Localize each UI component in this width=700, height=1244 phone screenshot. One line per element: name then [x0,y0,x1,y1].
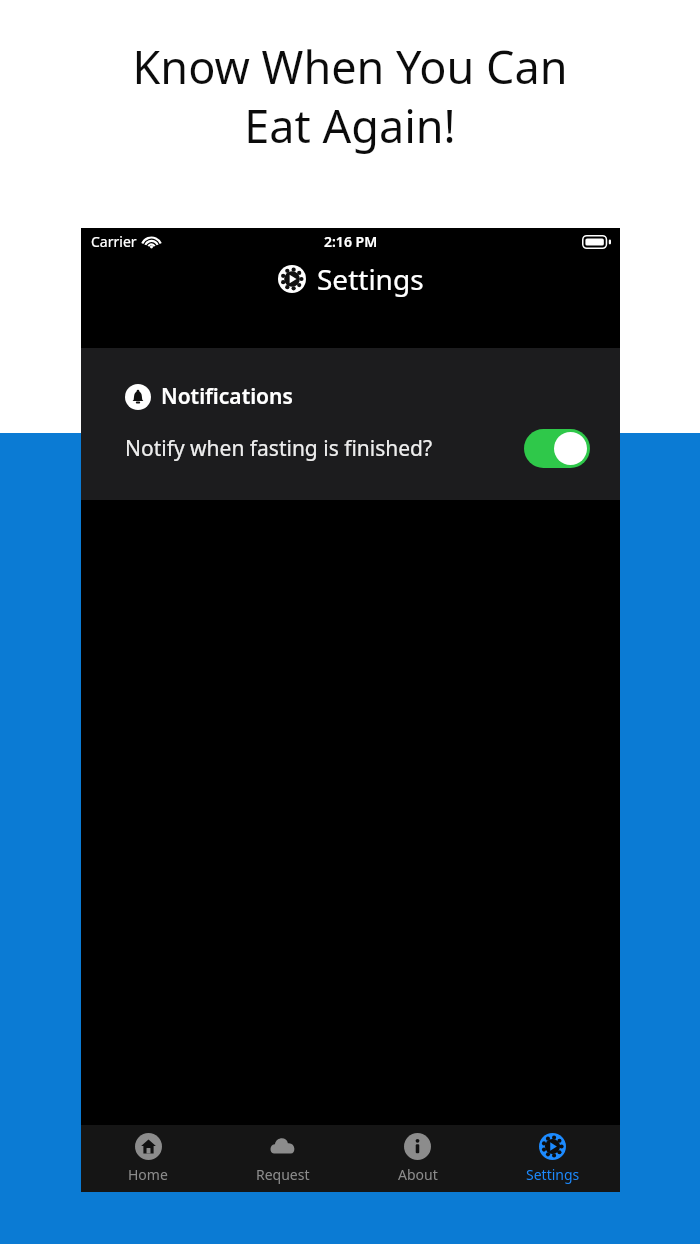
staticText: Settings [317,260,424,298]
staticText: Carrier [91,232,137,251]
staticText: 2:16 PM [324,232,378,251]
staticText: Home [128,1165,168,1184]
staticText: About [398,1165,438,1184]
staticText: Settings [526,1165,580,1184]
button[interactable]: Notify when fasting is finished [524,429,590,468]
staticText: Notifications [161,382,293,411]
button[interactable]: Notify when fasting is finished? [125,429,590,468]
button[interactable]: About [350,1125,485,1192]
button[interactable]: Settings [485,1125,620,1192]
button[interactable]: Home [81,1125,215,1192]
staticText: Request [256,1165,310,1184]
button[interactable]: Request [215,1125,350,1192]
staticText: Notify when fasting is finished? [125,434,433,463]
staticText: Know When You Can Eat Again! [24,36,676,156]
